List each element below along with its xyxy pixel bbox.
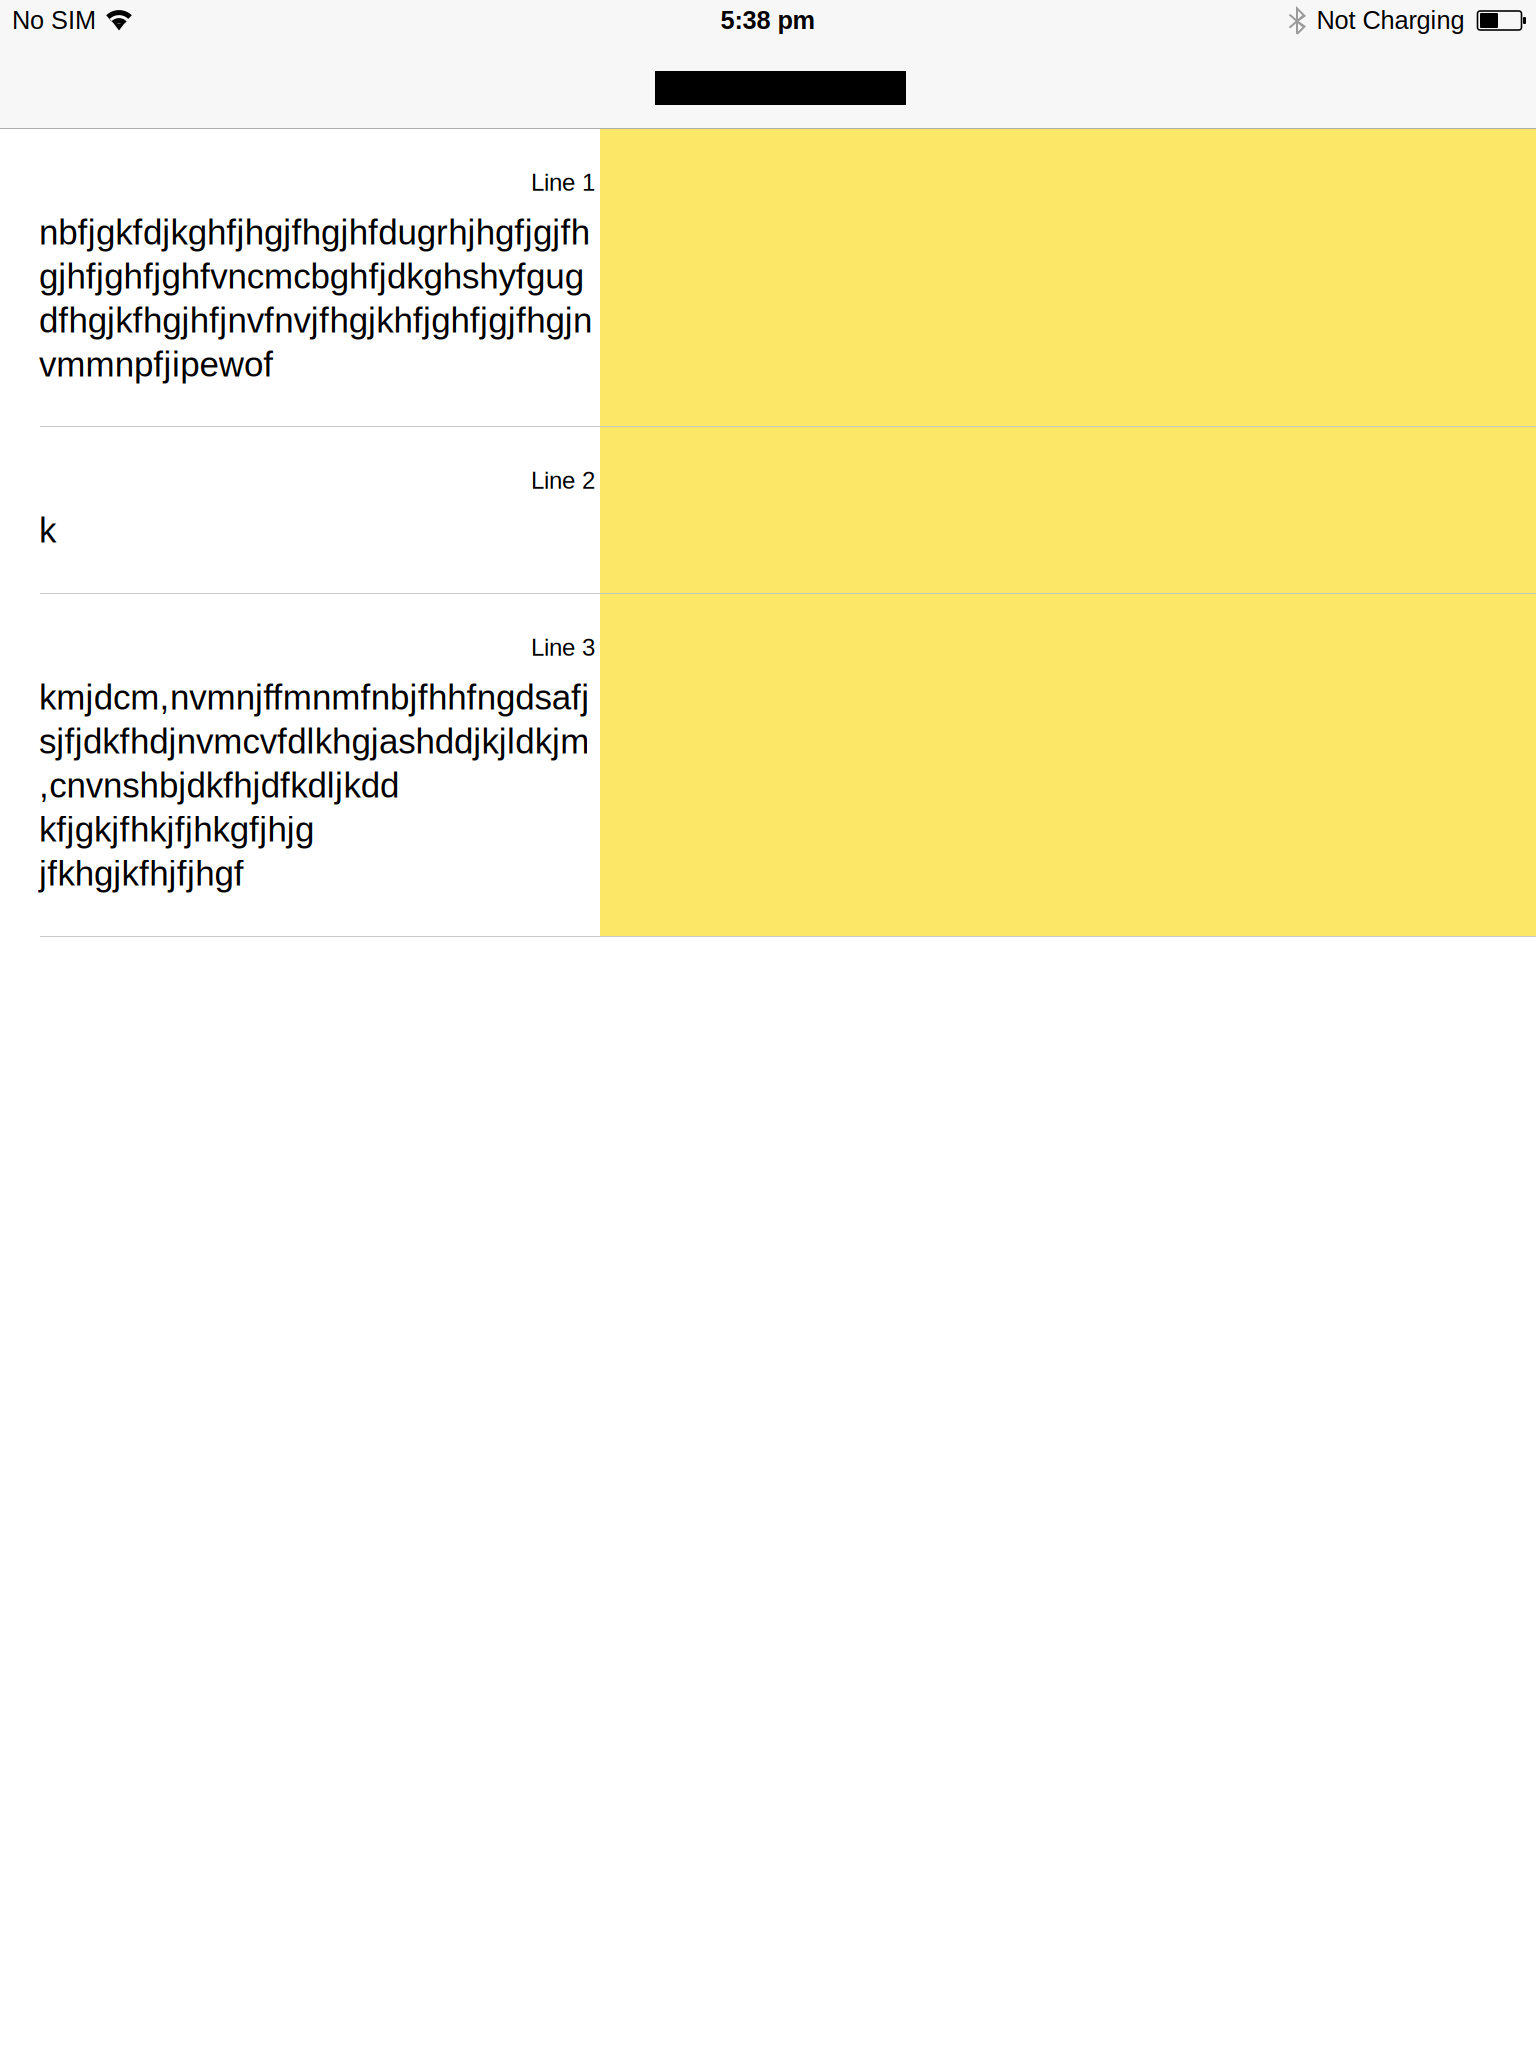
staticText: No SIM — [12, 6, 96, 34]
staticText: Line 3 — [531, 634, 595, 661]
staticText: Line 2 — [531, 467, 595, 494]
button[interactable]: Line 2 — [0, 427, 1536, 594]
staticText: Not Charging — [1316, 6, 1464, 34]
staticText: Line 1 — [531, 169, 595, 196]
staticText: k — [39, 511, 56, 550]
button[interactable]: Line 1 — [0, 129, 1536, 427]
button[interactable]: Line 3 — [0, 594, 1536, 937]
staticText: kmjdcm,nvmnjffmnmfnbjfhhfngdsafj sjfjdkf… — [39, 678, 589, 893]
staticText: 5:38 pm — [720, 6, 815, 34]
staticText: nbfjgkfdjkghfjhgjfhgjhfdugrhjhgfjgjfh gj… — [39, 213, 592, 384]
